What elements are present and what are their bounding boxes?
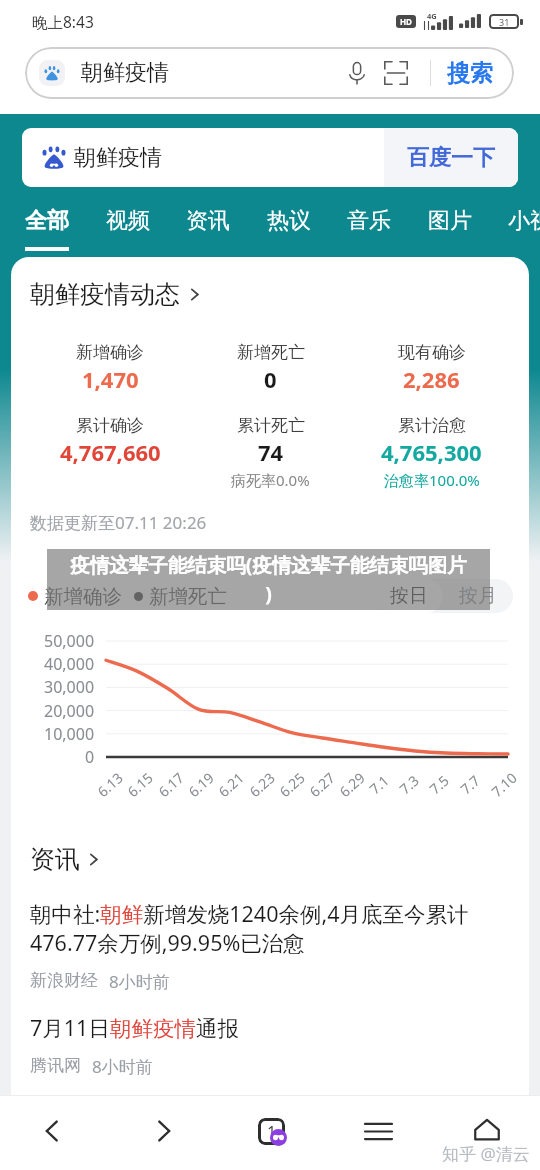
staticText: 8小时前 <box>109 970 170 993</box>
staticText: 累计确诊 <box>76 415 144 436</box>
staticText: 7.1 <box>365 771 393 798</box>
staticText: 50,000 <box>44 630 95 652</box>
staticText: 6.17 <box>154 768 188 801</box>
staticText: 6.15 <box>123 768 157 801</box>
staticText: 6.23 <box>245 768 279 801</box>
staticText: 40,000 <box>44 653 95 675</box>
staticText: 4,765,300 <box>381 437 482 467</box>
button[interactable]: Back <box>16 1096 88 1166</box>
button[interactable]: 朝鲜疫情 <box>25 47 514 99</box>
staticText: 4G <box>427 11 437 21</box>
staticText: 晚上8:43 <box>32 11 94 32</box>
button[interactable]: 搜索 <box>447 59 493 88</box>
button[interactable]: 图片 <box>428 207 472 251</box>
button[interactable]: Home <box>451 1096 523 1166</box>
staticText: 30,000 <box>44 676 95 698</box>
button[interactable]: Scan code <box>384 61 408 85</box>
staticText: 图片 <box>428 207 472 235</box>
staticText: 知乎 @清云 <box>442 1142 530 1165</box>
staticText: 6.29 <box>335 768 369 801</box>
staticText: 7.10 <box>487 768 521 801</box>
staticText: 新浪财经 <box>30 970 98 991</box>
button[interactable]: 按月 <box>443 579 513 613</box>
staticText: 0 <box>85 746 95 768</box>
staticText: 按日 <box>390 584 428 608</box>
staticText: 搜索 <box>447 59 493 88</box>
staticText: 病死率0.0% <box>231 470 310 490</box>
button[interactable]: Forward <box>128 1096 200 1166</box>
staticText: 74 <box>258 437 284 467</box>
staticText: 1 <box>267 1121 277 1143</box>
staticText: 资讯 <box>186 207 230 235</box>
staticText: 新增确诊 <box>76 342 144 363</box>
staticText: 百度一下 <box>407 144 495 172</box>
staticText: 治愈率100.0% <box>384 470 480 490</box>
staticText: 视频 <box>106 207 150 235</box>
staticText: 小视频 <box>508 207 540 235</box>
staticText: 资讯 <box>30 844 80 875</box>
staticText: 20,000 <box>44 700 95 722</box>
button[interactable]: 视频 <box>106 207 150 251</box>
staticText: 朝鲜疫情 <box>81 59 169 87</box>
staticText: 7月11日朝鲜疫情通报 <box>30 1013 239 1042</box>
staticText: 热议 <box>267 207 311 235</box>
button[interactable]: 朝中社:朝鲜新增发烧1240余例,4月底至今累计 476.77余万例,99.95… <box>30 899 512 993</box>
staticText: 疫情这辈子能结束吗(疫情这辈子能结束吗图片 ) <box>47 551 490 607</box>
button[interactable]: 资讯 <box>186 207 230 251</box>
staticText: 0 <box>264 364 277 394</box>
staticText: 6.25 <box>275 768 309 801</box>
staticText: 累计死亡 <box>237 415 305 436</box>
staticText: 新增死亡 <box>237 342 305 363</box>
staticText: 31 <box>499 16 510 28</box>
staticText: 7.3 <box>395 771 423 798</box>
staticText: 7.7 <box>456 771 484 798</box>
staticText: 音乐 <box>347 207 391 235</box>
staticText: 7.5 <box>425 771 453 798</box>
staticText: 10,000 <box>44 723 95 745</box>
button[interactable]: Voice search <box>344 60 370 86</box>
staticText: 朝鲜疫情 <box>74 144 162 172</box>
staticText: HD <box>400 16 412 27</box>
staticText: 现有确诊 <box>398 342 466 363</box>
staticText: 全部 <box>25 207 69 235</box>
staticText: 新增确诊 <box>44 584 122 609</box>
button[interactable]: Tabs <box>235 1096 307 1166</box>
staticText: 8小时前 <box>92 1055 153 1078</box>
button[interactable]: Menu <box>342 1096 414 1166</box>
button[interactable]: 全部 <box>25 207 69 251</box>
button[interactable]: 百度一下 <box>384 128 518 187</box>
staticText: 新增死亡 <box>149 584 227 609</box>
staticText: 朝鲜疫情动态 <box>30 279 180 310</box>
staticText: 6.19 <box>184 768 218 801</box>
staticText: 6.21 <box>214 768 248 801</box>
staticText: 腾讯网 <box>30 1055 81 1076</box>
button[interactable]: 百度一下 <box>22 128 518 187</box>
staticText: 6.27 <box>305 768 339 801</box>
staticText: 朝中社:朝鲜新增发烧1240余例,4月底至今累计 476.77余万例,99.95… <box>30 899 512 957</box>
button[interactable]: 音乐 <box>347 207 391 251</box>
button[interactable]: 朝鲜疫情动态 <box>30 279 202 310</box>
staticText: 4,767,660 <box>60 437 161 467</box>
button[interactable]: 7月11日朝鲜疫情通报 <box>30 1013 239 1078</box>
button[interactable]: 热议 <box>267 207 311 251</box>
staticText: 1,470 <box>82 364 139 394</box>
staticText: 累计治愈 <box>398 415 466 436</box>
button[interactable]: 资讯 <box>30 844 101 875</box>
button[interactable]: 按日 <box>374 579 443 613</box>
button[interactable]: 小视频 <box>508 207 540 251</box>
staticText: 数据更新至07.11 20:26 <box>30 511 207 534</box>
staticText: 按月 <box>459 584 497 608</box>
staticText: 6.13 <box>93 768 127 801</box>
staticText: 2,286 <box>403 364 460 394</box>
